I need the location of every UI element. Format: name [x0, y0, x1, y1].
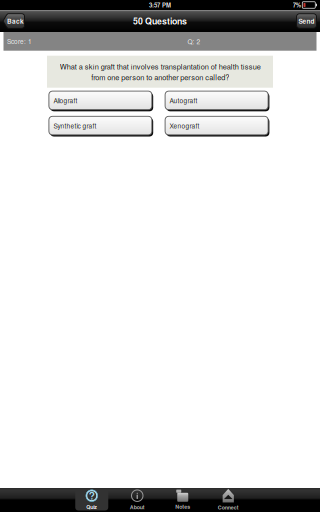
- staticText: Autograft: [170, 96, 198, 105]
- button[interactable]: Back: [3, 14, 24, 28]
- button[interactable]: Send: [296, 14, 316, 28]
- staticText: Connect: [218, 503, 239, 511]
- button[interactable]: Synthetic graft: [49, 116, 155, 137]
- button[interactable]: Notes: [160, 488, 205, 512]
- staticText: Notes: [175, 503, 190, 510]
- button[interactable]: Autograft: [165, 91, 271, 112]
- button[interactable]: Allograft: [49, 91, 155, 112]
- staticText: Back: [7, 16, 24, 26]
- staticText: 3:57 PM: [149, 1, 171, 9]
- staticText: ?: [89, 488, 95, 503]
- staticText: Allograft: [53, 96, 77, 105]
- staticText: Quiz: [86, 503, 97, 510]
- button[interactable]: Xenograft: [165, 116, 271, 137]
- staticText: Xenograft: [170, 121, 200, 130]
- staticText: Send: [298, 16, 314, 26]
- staticText: About: [130, 503, 145, 511]
- staticText: Q: 2: [187, 37, 200, 46]
- button[interactable]: About: [114, 488, 160, 512]
- button[interactable]: Connect: [205, 488, 251, 512]
- staticText: Score: 1: [7, 37, 32, 46]
- staticText: What a skin graft that involves transpla…: [59, 61, 260, 82]
- staticText: 50 Questions: [133, 15, 187, 27]
- staticText: Synthetic graft: [53, 121, 96, 130]
- staticText: 7%: [293, 1, 301, 9]
- button[interactable]: ?: [69, 488, 114, 512]
